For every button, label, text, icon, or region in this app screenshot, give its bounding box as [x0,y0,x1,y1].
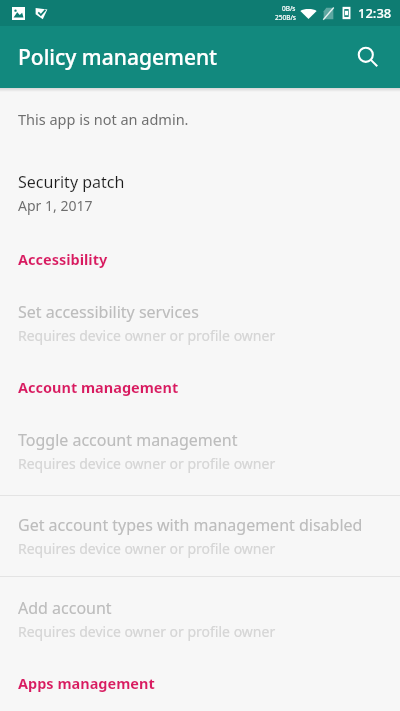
staticText: Accessibility [18,249,108,269]
staticText: Requires device owner or profile owner [18,454,276,473]
staticText: This app is not an admin. [18,109,189,129]
staticText: 12:38 [358,4,392,22]
button[interactable]: Search [346,35,390,79]
staticText: Apps management [18,673,155,693]
staticText: Requires device owner or profile owner [18,539,276,558]
button[interactable]: Add account [0,597,400,641]
button[interactable]: Set accessibility services [0,301,400,345]
staticText: 250B/s [275,13,296,22]
staticText: Set accessibility services [18,301,199,323]
button[interactable]: Get account types with management disabl… [0,514,400,558]
staticText: Policy management [18,43,218,72]
staticText: Add account [18,597,112,619]
staticText: Security patch [18,171,125,193]
staticText: 0B/s [282,4,296,13]
button[interactable]: Accessibility [0,249,400,269]
staticText: Toggle account management [18,429,238,451]
staticText: Requires device owner or profile owner [18,326,276,345]
button[interactable]: Security patch [0,171,400,215]
staticText: Apr 1, 2017 [18,196,93,215]
staticText: Account management [18,377,179,397]
button[interactable]: Account management [0,377,400,397]
staticText: Requires device owner or profile owner [18,622,276,641]
button[interactable]: Apps management [0,673,400,693]
button[interactable]: Toggle account management [0,429,400,473]
staticText: Get account types with management disabl… [18,514,363,536]
